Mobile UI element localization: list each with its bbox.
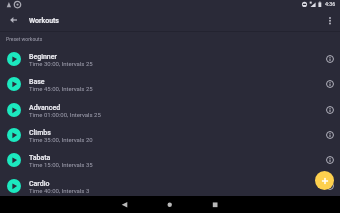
staticText: Time 45:00, Intervals 25 (29, 85, 93, 92)
button[interactable]: Add workout (315, 171, 334, 190)
staticText: Cardio (29, 180, 50, 188)
staticText: Base (29, 78, 45, 86)
button[interactable]: More options (320, 11, 340, 31)
staticText: Beginner (29, 53, 57, 61)
button[interactable]: Back (3, 11, 23, 31)
staticText: 4:36 (325, 1, 336, 7)
button[interactable]: Workout info (320, 176, 340, 196)
button[interactable]: Climbs (0, 122, 340, 147)
button[interactable]: Workout info (320, 74, 340, 94)
button[interactable]: Tabata (0, 147, 340, 172)
button[interactable]: Workout info (320, 150, 340, 170)
staticText: Workouts (29, 17, 59, 25)
staticText: Preset workouts (6, 36, 43, 42)
button[interactable]: Workout info (320, 125, 340, 145)
button[interactable]: Beginner (0, 46, 340, 71)
staticText: Time 35:00, Intervals 20 (29, 136, 93, 143)
staticText: Time 40:00, Intervals 3 (29, 187, 90, 194)
staticText: Time 15:00, Intervals 35 (29, 161, 93, 168)
staticText: Climbs (29, 129, 51, 137)
button[interactable]: Workout info (320, 49, 340, 69)
staticText: Advanced (29, 104, 61, 112)
button[interactable]: Advanced (0, 97, 340, 122)
button[interactable]: Cardio (0, 173, 340, 198)
button[interactable]: Base (0, 71, 340, 96)
staticText: Tabata (29, 154, 51, 162)
staticText: Time 01:00:00, Intervals 25 (29, 111, 101, 118)
button[interactable]: Workout info (320, 100, 340, 120)
staticText: Time 30:00, Intervals 25 (29, 60, 93, 67)
